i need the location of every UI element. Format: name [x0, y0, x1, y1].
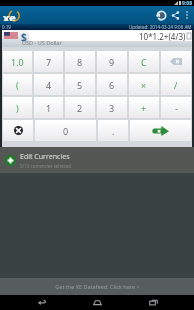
staticText: 0 [63, 125, 69, 137]
staticText: 5 [77, 79, 83, 91]
staticText: ) [16, 102, 19, 114]
button[interactable]: 7 [34, 51, 63, 72]
staticText: 7 [46, 56, 52, 68]
button[interactable] [130, 120, 191, 141]
button[interactable]: 3 [97, 97, 127, 118]
staticText: 5/10 currencies selected [20, 163, 72, 169]
button[interactable]: ) [3, 97, 32, 118]
staticText: 8 [77, 56, 83, 68]
staticText: - [175, 102, 178, 114]
staticText: 2 [77, 102, 83, 114]
button[interactable]: Back [26, 295, 56, 310]
staticText: ( [16, 79, 19, 91]
staticText: × [141, 79, 147, 91]
button[interactable]: - [161, 97, 191, 118]
staticText: 1.0 [11, 56, 24, 68]
staticText: + [141, 102, 147, 114]
staticText: C [141, 56, 147, 68]
staticText: $ [21, 30, 27, 44]
button[interactable]: / [161, 74, 191, 95]
button[interactable]: 1 [34, 97, 63, 118]
staticText: Updated: 2014-03-24 9:06 AM [129, 24, 192, 30]
staticText: . [112, 125, 115, 137]
button[interactable]: Get the XE Datafeed. Click here > [0, 278, 194, 295]
button[interactable]: + [129, 97, 159, 118]
staticText: 0.19 [2, 24, 11, 30]
button[interactable]: More options [182, 10, 192, 20]
button[interactable]: $ [2, 30, 192, 47]
button[interactable]: Share [168, 8, 182, 22]
button[interactable]: Edit Currencies [5, 147, 189, 173]
button[interactable]: C [129, 51, 159, 72]
button[interactable]: Home [82, 295, 112, 310]
button[interactable]: × [129, 74, 159, 95]
button[interactable]: 0 [35, 120, 96, 141]
staticText: 9:08 [182, 0, 192, 6]
button[interactable]: 5 [65, 74, 95, 95]
button[interactable] [3, 120, 33, 141]
button[interactable]: Recents [138, 295, 168, 310]
button[interactable]: Refresh [154, 8, 168, 22]
staticText: USD - US Dollar [22, 39, 62, 46]
button[interactable]: 9 [97, 51, 127, 72]
button[interactable]: 4 [34, 74, 63, 95]
button[interactable]: . [98, 120, 128, 141]
staticText: 9 [109, 56, 115, 68]
staticText: 3 [109, 102, 115, 114]
button[interactable]: ( [3, 74, 32, 95]
button[interactable] [161, 51, 191, 72]
staticText: Edit Currencies [20, 152, 70, 162]
button[interactable]: 8 [65, 51, 95, 72]
button[interactable]: XE [3, 10, 20, 21]
button[interactable]: 1.0 [3, 51, 32, 72]
staticText: 4 [46, 79, 52, 91]
staticText: xe [3, 10, 16, 21]
button[interactable]: 2 [65, 97, 95, 118]
staticText: 10*1.2+(4/3) [139, 31, 186, 41]
staticText: 6 [109, 79, 115, 91]
staticText: / [174, 79, 178, 91]
staticText: 1 [46, 102, 52, 114]
button[interactable]: 6 [97, 74, 127, 95]
staticText: Get the XE Datafeed. Click here > [55, 283, 140, 290]
